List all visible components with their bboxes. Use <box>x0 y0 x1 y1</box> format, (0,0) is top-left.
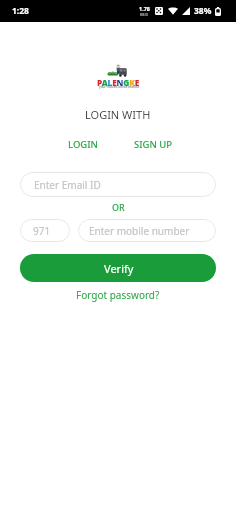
staticText: 38% <box>194 5 212 17</box>
staticText: 1.78 <box>139 5 150 12</box>
staticText: Verify <box>104 261 134 276</box>
button[interactable]: Enter Email ID <box>20 172 216 197</box>
staticText: 1:28 <box>12 5 29 17</box>
button[interactable]: Enter mobile number <box>78 219 216 242</box>
button[interactable]: LOGIN <box>64 136 102 153</box>
button[interactable]: Verify <box>20 254 216 282</box>
staticText: LOGIN <box>68 138 98 151</box>
staticText: OR <box>112 201 125 213</box>
staticText: Forgot password? <box>76 288 160 302</box>
staticText: SIGN UP <box>134 138 173 151</box>
button[interactable]: Forgot password? <box>70 286 166 304</box>
staticText: your trusted online market <box>99 85 139 89</box>
staticText: Enter mobile number <box>89 224 190 238</box>
button[interactable]: 971 <box>20 219 70 242</box>
staticText: PALENGKE <box>97 77 140 88</box>
button[interactable]: SIGN UP <box>130 136 177 153</box>
staticText: Enter Email ID <box>34 178 101 192</box>
staticText: 971 <box>33 224 51 238</box>
staticText: LOGIN WITH <box>85 107 151 122</box>
staticText: KB/S <box>140 12 149 17</box>
